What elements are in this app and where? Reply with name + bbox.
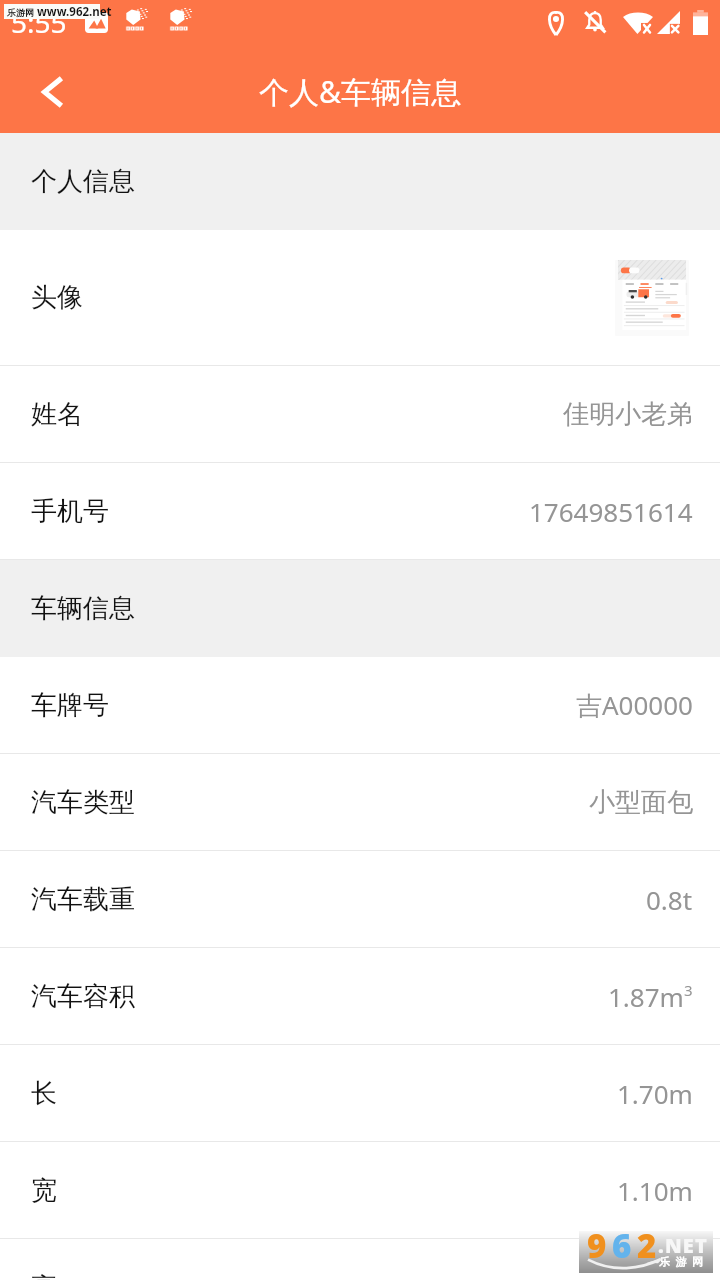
staticText: 9 [587, 1223, 607, 1265]
staticText: 5:55 [11, 3, 67, 41]
staticText: 个人&车辆信息 [259, 71, 461, 112]
staticText: www.962.net [37, 4, 112, 19]
staticText: 1.10m [617, 1173, 693, 1208]
staticText: 车辆信息 [31, 592, 135, 625]
staticText: 3 [684, 980, 693, 1000]
other: Battery [693, 10, 708, 35]
other: Wi-Fi off [623, 11, 653, 34]
button[interactable]: 高 [0, 1239, 720, 1280]
button[interactable]: 头像 [0, 230, 720, 366]
staticText: 高 [31, 1271, 57, 1280]
button[interactable]: 宽 [0, 1142, 720, 1239]
staticText: 汽车类型 [31, 786, 135, 819]
button[interactable]: 汽车容积 [0, 948, 720, 1045]
other: Location [547, 10, 565, 35]
staticText: 车牌号 [31, 689, 109, 722]
staticText: 1.30m [617, 1270, 693, 1280]
button[interactable]: 车牌号 [0, 657, 720, 754]
staticText: 1.87m [608, 979, 684, 1014]
staticText: 乐游网 [659, 1255, 709, 1269]
staticText: 个人信息 [31, 165, 135, 198]
button[interactable]: 长 [0, 1045, 720, 1142]
staticText: 0.8t [646, 882, 693, 917]
other: Notifications off [582, 9, 608, 35]
button[interactable]: 手机号 [0, 463, 720, 560]
staticText: 乐游网 [7, 7, 34, 18]
staticText: 长 [31, 1077, 57, 1110]
staticText: 手机号 [31, 495, 109, 528]
staticText: 1.70m [617, 1076, 693, 1111]
staticText: 姓名 [31, 398, 83, 431]
staticText: 汽车载重 [31, 883, 135, 916]
button[interactable]: 汽车类型 [0, 754, 720, 851]
staticText: 2 [637, 1223, 657, 1265]
other: No signal [657, 11, 680, 34]
staticText: 17649851614 [529, 494, 693, 529]
button[interactable]: Back [0, 50, 104, 133]
staticText: 汽车容积 [31, 980, 135, 1013]
staticText: 6 [612, 1223, 632, 1265]
staticText: 吉A00000 [576, 687, 693, 723]
staticText: 宽 [31, 1174, 57, 1207]
button[interactable]: 姓名 [0, 366, 720, 463]
staticText: 头像 [31, 281, 83, 314]
button[interactable]: 汽车载重 [0, 851, 720, 948]
staticText: 佳明小老弟 [563, 398, 693, 431]
staticText: .NET [658, 1232, 709, 1259]
staticText: 小型面包 [589, 786, 693, 819]
